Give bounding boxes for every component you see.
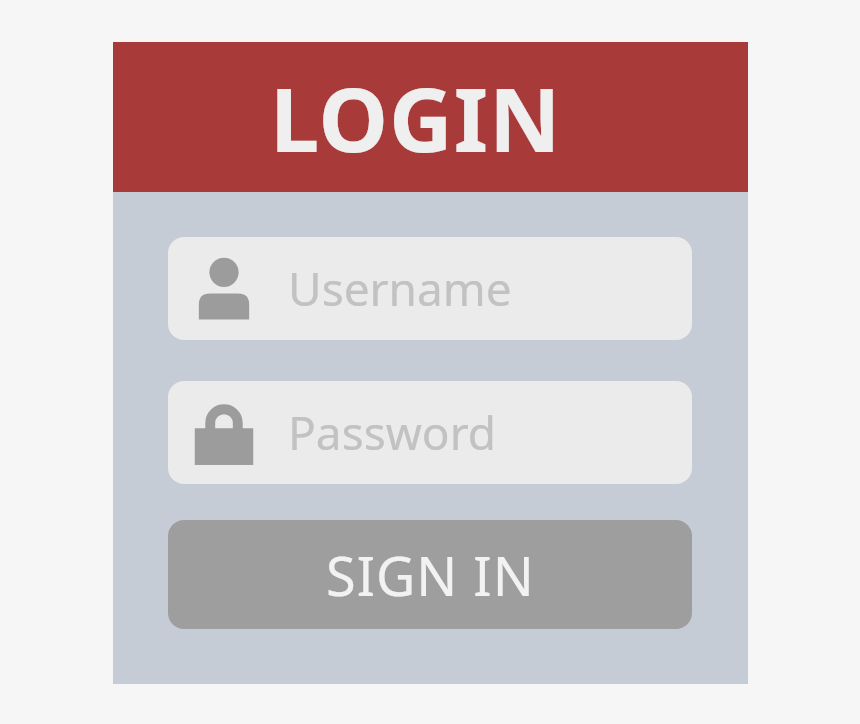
- button[interactable]: Password field: [168, 381, 692, 484]
- staticText: LOGIN: [270, 58, 562, 178]
- staticText: Username: [288, 257, 512, 320]
- button[interactable]: Username field: [168, 237, 692, 340]
- button[interactable]: SIGN IN: [168, 520, 692, 629]
- staticText: Password: [288, 401, 497, 464]
- staticText: SIGN IN: [326, 538, 535, 612]
